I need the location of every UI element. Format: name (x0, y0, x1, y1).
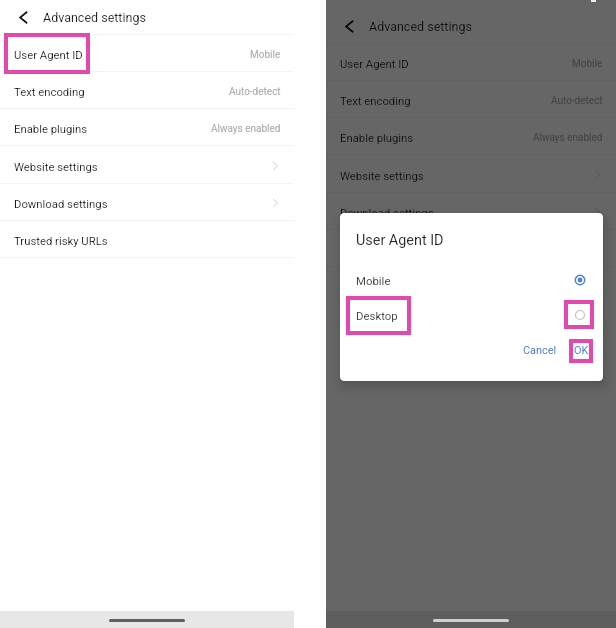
staticText: Advanced settings (369, 19, 472, 34)
button[interactable]: Back (8, 2, 38, 32)
button[interactable]: Text encoding (0, 72, 294, 108)
button[interactable]: User Agent ID (326, 44, 616, 80)
button[interactable]: Download settings (0, 184, 294, 220)
staticText: Enable plugins (340, 132, 414, 145)
staticText: Cancel (523, 344, 557, 357)
button[interactable]: Website settings (326, 156, 616, 192)
staticText: Download settings (14, 198, 108, 211)
staticText: Enable plugins (14, 123, 88, 136)
button[interactable]: Website settings (0, 147, 294, 183)
button[interactable]: User Agent ID (0, 35, 294, 71)
staticText: Trusted risky URLs (14, 235, 108, 248)
staticText: Text encoding (340, 95, 411, 108)
staticText: Trusted risky URLs (340, 244, 434, 257)
button[interactable]: Trusted risky URLs (326, 230, 616, 266)
staticText: Desktop (356, 309, 398, 322)
button[interactable]: Trusted risky URLs (0, 221, 294, 257)
staticText: Auto-detect (229, 86, 281, 98)
button[interactable]: Back (334, 11, 364, 41)
button[interactable]: Cancel (517, 339, 563, 362)
button[interactable]: OK (568, 339, 595, 362)
staticText: Advanced settings (43, 10, 146, 25)
staticText: Always enabled (211, 123, 281, 135)
staticText: Download settings (340, 207, 434, 220)
staticText: User Agent ID (356, 232, 444, 249)
button[interactable]: Enable plugins (0, 109, 294, 145)
staticText: Mobile (356, 274, 391, 287)
staticText: Mobile (572, 58, 603, 70)
staticText: Website settings (340, 170, 424, 183)
staticText: Auto-detect (551, 95, 603, 107)
button[interactable]: Desktop (340, 301, 603, 329)
staticText: User Agent ID (14, 49, 83, 62)
staticText: Website settings (14, 161, 98, 174)
button[interactable]: Mobile (340, 266, 603, 294)
staticText: User Agent ID (340, 58, 409, 71)
staticText: Always enabled (533, 132, 603, 144)
staticText: Mobile (250, 49, 281, 61)
button[interactable]: Text encoding (326, 81, 616, 117)
staticText: OK (574, 344, 589, 357)
button[interactable]: Download settings (326, 193, 616, 229)
staticText: Text encoding (14, 86, 85, 99)
button[interactable]: Enable plugins (326, 118, 616, 154)
